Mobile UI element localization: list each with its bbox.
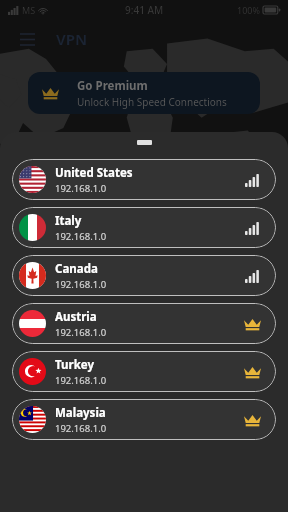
staticText: Malaysia xyxy=(55,405,106,421)
staticText: Turkey xyxy=(55,357,95,373)
staticText: 192.168.1.0 xyxy=(55,182,107,195)
staticText: 192.168.1.0 xyxy=(55,422,107,435)
staticText: 100% xyxy=(237,4,260,16)
button[interactable]: United States xyxy=(12,159,276,200)
staticText: Austria xyxy=(55,309,97,325)
button[interactable]: Italy xyxy=(12,207,276,248)
button[interactable]: Canada xyxy=(12,255,276,296)
staticText: Italy xyxy=(55,213,82,229)
button[interactable]: Malaysia xyxy=(12,399,276,440)
staticText: 192.168.1.0 xyxy=(55,278,107,291)
button[interactable]: Turkey xyxy=(12,351,276,392)
button[interactable]: Go Premium xyxy=(28,72,260,114)
staticText: MS xyxy=(22,4,36,16)
staticText: United States xyxy=(55,165,133,181)
staticText: 9:41 AM xyxy=(125,3,164,17)
button[interactable]: Open navigation menu xyxy=(12,24,42,54)
staticText: Go Premium xyxy=(77,78,148,94)
staticText: Unlock High Speed Connections xyxy=(77,95,227,109)
staticText: 192.168.1.0 xyxy=(55,230,107,243)
staticText: VPN xyxy=(56,29,88,49)
staticText: Canada xyxy=(55,261,98,277)
staticText: 192.168.1.0 xyxy=(55,374,107,387)
staticText: 192.168.1.0 xyxy=(55,326,107,339)
button[interactable]: Austria xyxy=(12,303,276,344)
